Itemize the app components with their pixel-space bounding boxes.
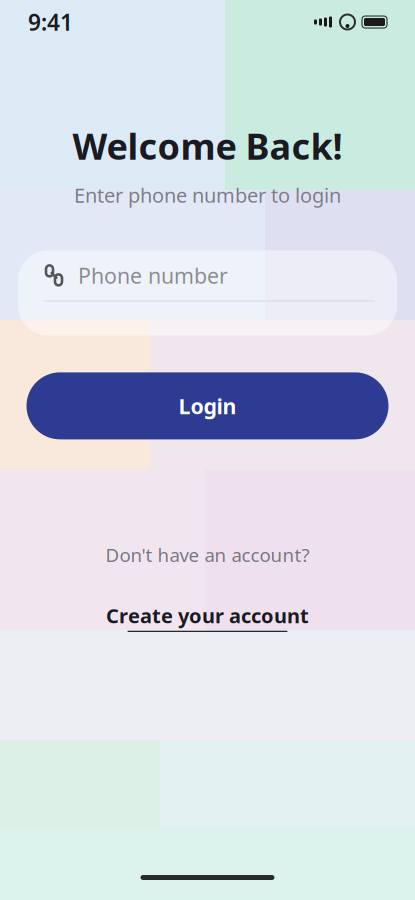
staticText: Welcome Back!	[72, 122, 342, 170]
button[interactable]: Login	[26, 372, 388, 439]
staticText: Create your account	[106, 602, 309, 629]
staticText: 9:41	[28, 7, 73, 37]
button[interactable]: Create your account	[96, 596, 319, 638]
staticText: Enter phone number to login	[74, 182, 341, 208]
staticText: Login	[178, 392, 236, 420]
staticText: Phone number	[78, 261, 228, 289]
staticText: Don't have an account?	[105, 542, 309, 567]
